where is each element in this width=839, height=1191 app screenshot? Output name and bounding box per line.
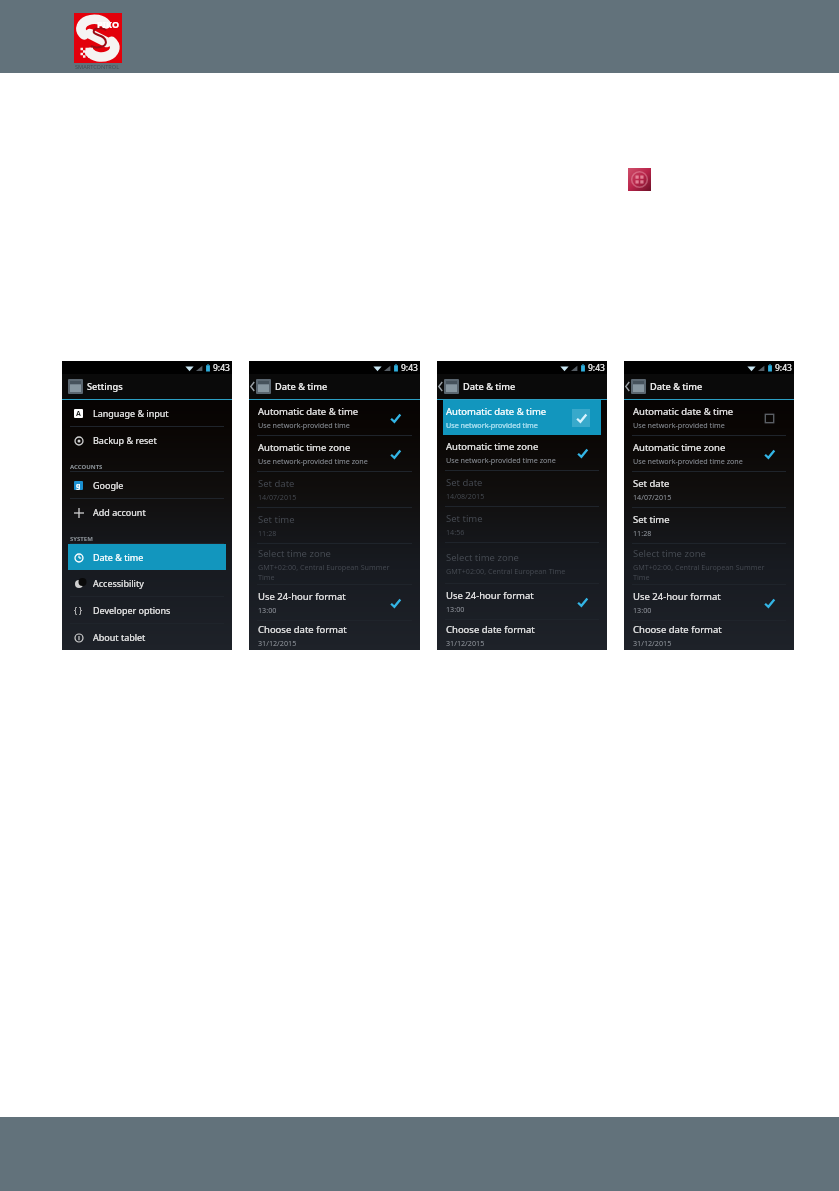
- button[interactable]: Toggle Automatic date & time: [760, 409, 778, 427]
- button[interactable]: Choose date format: [633, 621, 778, 650]
- staticText: Use 24-hour format: [446, 589, 534, 602]
- button[interactable]: Date & time: [73, 544, 226, 570]
- button[interactable]: Toggle Use 24-hour format: [386, 594, 404, 612]
- staticText: Set time: [633, 513, 670, 526]
- button[interactable]: Select time zone: [633, 544, 778, 584]
- button[interactable]: Toggle Automatic time zone: [760, 445, 778, 463]
- staticText: Select time zone: [633, 547, 706, 560]
- staticText: Set time: [446, 512, 483, 525]
- staticText: Automatic date & time: [633, 405, 734, 418]
- staticText: Set date: [633, 477, 670, 490]
- staticText: Select time zone: [446, 551, 519, 564]
- staticText: Automatic date & time: [446, 405, 547, 418]
- staticText: 9:43: [213, 362, 230, 374]
- staticText: 13:00: [446, 604, 465, 614]
- button[interactable]: Backup & reset: [73, 427, 232, 453]
- button[interactable]: Automatic time zone: [258, 436, 404, 471]
- button[interactable]: Add account: [73, 499, 232, 525]
- button[interactable]: g: [73, 472, 232, 498]
- staticText: 31/12/2015: [258, 638, 297, 648]
- staticText: 9:43: [401, 362, 418, 374]
- button[interactable]: Settings app icon: [628, 168, 651, 191]
- staticText: Use network-provided time zone: [258, 456, 368, 466]
- button[interactable]: Set date: [258, 472, 404, 507]
- staticText: GMT+02:00, Central European Time: [446, 566, 566, 576]
- staticText: Select time zone: [258, 547, 331, 560]
- staticText: ACCOUNTS: [70, 463, 103, 471]
- button[interactable]: Use 24-hour format: [446, 584, 591, 619]
- button[interactable]: Automatic date & time: [446, 400, 590, 435]
- staticText: A: [76, 409, 81, 418]
- staticText: GMT+02:00, Central European Summer Time: [633, 562, 765, 582]
- staticText: 14/07/2015: [633, 492, 672, 502]
- button[interactable]: Automatic date & time: [633, 400, 778, 435]
- staticText: Automatic time zone: [446, 440, 539, 453]
- button[interactable]: About tablet: [73, 624, 232, 650]
- staticText: About tablet: [93, 631, 146, 643]
- staticText: SMARTCONTROL: [75, 63, 120, 71]
- staticText: Use network-provided time: [633, 420, 725, 430]
- staticText: Language & input: [93, 407, 169, 419]
- staticText: Use network-provided time zone: [633, 456, 743, 466]
- button[interactable]: Choose date format: [446, 620, 591, 650]
- staticText: Set date: [446, 476, 483, 489]
- staticText: Use network-provided time zone: [446, 455, 556, 465]
- staticText: 11:28: [633, 528, 652, 538]
- button[interactable]: Automatic time zone: [633, 436, 778, 471]
- button[interactable]: Choose date format: [258, 621, 404, 650]
- staticText: 13:00: [258, 605, 277, 615]
- staticText: Google: [93, 479, 124, 491]
- staticText: Use 24-hour format: [258, 590, 346, 603]
- staticText: Date & time: [93, 551, 144, 563]
- staticText: Choose date format: [633, 623, 722, 636]
- button[interactable]: Automatic time zone: [446, 435, 591, 470]
- button[interactable]: Select time zone: [258, 544, 404, 584]
- staticText: Automatic time zone: [258, 441, 351, 454]
- button[interactable]: Set time: [446, 507, 591, 542]
- button[interactable]: Date & time: [625, 374, 794, 399]
- staticText: Settings: [87, 380, 123, 393]
- button[interactable]: Date & time: [438, 374, 607, 399]
- staticText: GMT+02:00, Central European Summer Time: [258, 562, 390, 582]
- staticText: Set time: [258, 513, 295, 526]
- button[interactable]: Use 24-hour format: [258, 585, 404, 620]
- staticText: 9:43: [588, 362, 605, 374]
- staticText: 31/12/2015: [446, 638, 485, 648]
- button[interactable]: Automatic date & time: [258, 400, 404, 435]
- button[interactable]: Set date: [446, 471, 591, 506]
- staticText: Date & time: [650, 380, 703, 393]
- button[interactable]: Toggle Automatic time zone: [573, 444, 591, 462]
- button[interactable]: Toggle Automatic date & time: [572, 409, 590, 427]
- staticText: Use network-provided time: [258, 420, 350, 430]
- staticText: 13:00: [633, 605, 652, 615]
- button[interactable]: Use 24-hour format: [633, 585, 778, 620]
- staticText: Date & time: [275, 380, 328, 393]
- button[interactable]: Toggle Automatic date & time: [386, 409, 404, 427]
- staticText: Set date: [258, 477, 295, 490]
- staticText: Use 24-hour format: [633, 590, 721, 603]
- button[interactable]: Select time zone: [446, 543, 591, 583]
- staticText: 31/12/2015: [633, 638, 672, 648]
- button[interactable]: Set date: [633, 472, 778, 507]
- staticText: Automatic time zone: [633, 441, 726, 454]
- button[interactable]: { }: [73, 597, 232, 623]
- button[interactable]: Toggle Automatic time zone: [386, 445, 404, 463]
- staticText: PIKO: [97, 18, 120, 30]
- button[interactable]: Toggle Use 24-hour format: [573, 593, 591, 611]
- staticText: Backup & reset: [93, 434, 157, 446]
- button[interactable]: Toggle Use 24-hour format: [760, 594, 778, 612]
- staticText: 9:43: [775, 362, 792, 374]
- staticText: Accessibility: [93, 577, 144, 589]
- button[interactable]: Date & time: [250, 374, 420, 399]
- button[interactable]: Settings: [68, 374, 232, 399]
- button[interactable]: Set time: [633, 508, 778, 543]
- staticText: Choose date format: [446, 623, 535, 636]
- button[interactable]: Accessibility: [73, 570, 232, 596]
- button[interactable]: Set time: [258, 508, 404, 543]
- staticText: { }: [74, 605, 83, 616]
- staticText: Automatic date & time: [258, 405, 359, 418]
- staticText: Use network-provided time: [446, 420, 538, 430]
- staticText: Add account: [93, 506, 146, 518]
- staticText: g: [76, 481, 81, 490]
- button[interactable]: A: [73, 400, 232, 426]
